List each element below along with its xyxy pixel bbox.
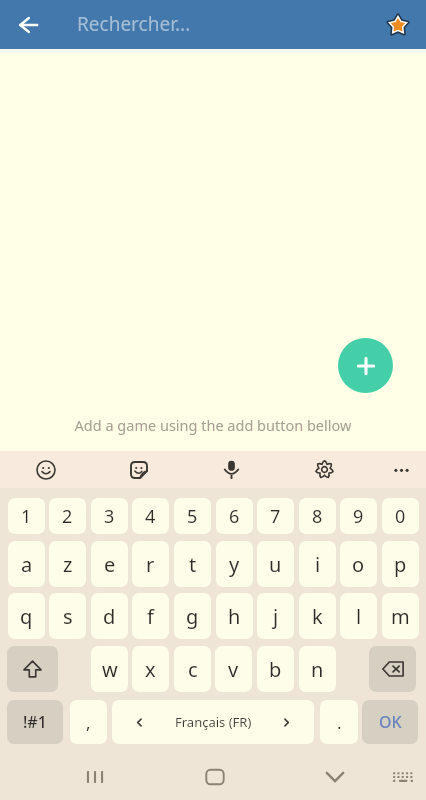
button[interactable]: h xyxy=(216,593,253,639)
button[interactable]: y xyxy=(216,541,253,587)
button[interactable]: , xyxy=(70,700,107,744)
staticText: z xyxy=(63,551,73,578)
staticText: a xyxy=(21,551,33,578)
staticText: k xyxy=(312,603,323,630)
staticText: p xyxy=(394,551,407,578)
staticText: m xyxy=(391,603,410,630)
staticText: y xyxy=(229,551,240,578)
button[interactable]: q xyxy=(8,593,45,639)
button[interactable]: Favorites xyxy=(378,5,418,45)
staticText: Rechercher... xyxy=(77,11,191,37)
button[interactable]: d xyxy=(91,593,128,639)
button[interactable]: 5 xyxy=(174,498,211,534)
staticText: d xyxy=(103,603,116,630)
button[interactable]: s xyxy=(49,593,86,639)
staticText: n xyxy=(311,656,324,683)
button[interactable]: m xyxy=(382,593,419,639)
staticText: w xyxy=(102,656,118,683)
staticText: Add a game using the add button bellow xyxy=(0,415,426,435)
button[interactable]: Change keyboard xyxy=(381,756,425,797)
button[interactable]: 7 xyxy=(257,498,294,534)
button[interactable]: . xyxy=(320,700,358,744)
button[interactable]: Shift xyxy=(7,646,58,692)
staticText: . xyxy=(337,711,342,734)
staticText: OK xyxy=(379,711,402,733)
button[interactable]: l xyxy=(340,593,377,639)
staticText: l xyxy=(356,603,362,630)
button[interactable]: c xyxy=(174,646,211,692)
button[interactable]: Back xyxy=(8,5,48,45)
button[interactable]: f xyxy=(132,593,169,639)
button[interactable]: Hide keyboard xyxy=(313,756,357,797)
staticText: f xyxy=(147,603,154,630)
staticText: j xyxy=(273,603,279,630)
staticText: x xyxy=(145,656,156,683)
staticText: 0 xyxy=(395,504,406,529)
button[interactable]: 8 xyxy=(299,498,336,534)
staticText: c xyxy=(188,656,198,683)
button[interactable]: j xyxy=(257,593,294,639)
staticText: t xyxy=(189,551,197,578)
button[interactable]: 4 xyxy=(132,498,169,534)
staticText: Français (FR) xyxy=(175,713,252,731)
staticText: v xyxy=(228,656,239,683)
staticText: b xyxy=(269,656,282,683)
button[interactable]: Voice input xyxy=(210,451,252,488)
staticText: o xyxy=(352,551,365,578)
button[interactable]: 2 xyxy=(49,498,86,534)
staticText: 2 xyxy=(62,504,73,529)
button[interactable]: g xyxy=(174,593,211,639)
button[interactable]: Backspace xyxy=(369,646,416,692)
button[interactable]: o xyxy=(340,541,377,587)
staticText: 7 xyxy=(270,504,281,529)
staticText: s xyxy=(63,603,73,630)
button[interactable]: v xyxy=(215,646,252,692)
button[interactable]: OK xyxy=(362,700,418,744)
button[interactable]: r xyxy=(132,541,169,587)
button[interactable]: Add game xyxy=(338,338,393,393)
staticText: 4 xyxy=(145,504,156,529)
button[interactable]: e xyxy=(91,541,128,587)
button[interactable]: 1 xyxy=(8,498,45,534)
staticText: e xyxy=(104,551,116,578)
button[interactable]: Settings xyxy=(303,451,345,488)
staticText: !#1 xyxy=(23,711,47,733)
button[interactable]: b xyxy=(257,646,294,692)
staticText: q xyxy=(20,603,33,630)
button[interactable]: 6 xyxy=(216,498,253,534)
staticText: 1 xyxy=(21,504,32,529)
button[interactable]: 3 xyxy=(91,498,128,534)
button[interactable]: Stickers xyxy=(118,451,160,488)
staticText: r xyxy=(146,551,155,578)
button[interactable]: t xyxy=(174,541,211,587)
staticText: h xyxy=(228,603,241,630)
button[interactable]: !#1 xyxy=(7,700,63,744)
staticText: g xyxy=(186,603,199,630)
button[interactable]: z xyxy=(49,541,86,587)
button[interactable]: a xyxy=(8,541,45,587)
button[interactable]: 9 xyxy=(340,498,377,534)
button[interactable]: Space, Français (FR) xyxy=(112,700,314,744)
staticText: u xyxy=(269,551,282,578)
button[interactable]: More options xyxy=(380,451,422,488)
staticText: , xyxy=(86,711,91,734)
button[interactable]: i xyxy=(299,541,336,587)
button[interactable]: Home xyxy=(193,756,237,797)
button[interactable]: p xyxy=(382,541,419,587)
button[interactable]: u xyxy=(257,541,294,587)
button[interactable]: w xyxy=(91,646,128,692)
button[interactable]: Emoji xyxy=(25,451,67,488)
staticText: 8 xyxy=(312,504,323,529)
button[interactable]: Recent apps xyxy=(73,756,117,797)
button[interactable]: x xyxy=(132,646,169,692)
staticText: 9 xyxy=(353,504,364,529)
button[interactable]: k xyxy=(299,593,336,639)
button[interactable]: n xyxy=(299,646,336,692)
staticText: 6 xyxy=(229,504,240,529)
staticText: 5 xyxy=(187,504,198,529)
staticText: 3 xyxy=(104,504,115,529)
button[interactable]: 0 xyxy=(382,498,419,534)
staticText: i xyxy=(315,551,321,578)
